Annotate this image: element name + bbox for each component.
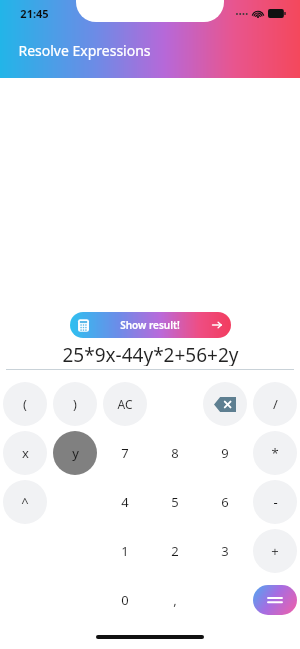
staticText: 21:45 xyxy=(20,6,49,21)
button[interactable]: Go xyxy=(210,318,224,332)
button[interactable]: Equals xyxy=(253,585,297,615)
button[interactable]: 4 xyxy=(103,480,147,524)
staticText: 9 xyxy=(221,444,229,462)
staticText: ^ xyxy=(21,493,29,511)
button[interactable]: 8 xyxy=(153,431,197,475)
button[interactable]: AC xyxy=(103,382,147,426)
staticText: ( xyxy=(23,395,27,413)
button[interactable]: / xyxy=(253,382,297,426)
button[interactable]: 6 xyxy=(203,480,247,524)
staticText: 6 xyxy=(221,493,229,511)
button[interactable]: Show result! xyxy=(70,312,231,338)
button[interactable]: x xyxy=(3,431,47,475)
button[interactable]: + xyxy=(253,529,297,573)
button[interactable]: ^ xyxy=(3,480,47,524)
staticText: 4 xyxy=(121,493,129,511)
staticText: * xyxy=(271,444,279,462)
button[interactable]: 5 xyxy=(153,480,197,524)
staticText: / xyxy=(273,395,278,413)
staticText: 0 xyxy=(121,591,129,609)
staticText: Resolve Expressions xyxy=(18,41,151,60)
button[interactable]: 3 xyxy=(203,529,247,573)
button[interactable]: , xyxy=(153,578,197,622)
staticText: 1 xyxy=(121,542,129,560)
button[interactable]: * xyxy=(253,431,297,475)
button[interactable]: ( xyxy=(3,382,47,426)
button[interactable]: 7 xyxy=(103,431,147,475)
button[interactable]: y xyxy=(53,431,97,475)
staticText: Show result! xyxy=(120,318,180,332)
staticText: ) xyxy=(73,395,77,413)
staticText: 5 xyxy=(171,493,179,511)
button[interactable]: 1 xyxy=(103,529,147,573)
button[interactable]: 0 xyxy=(103,578,147,622)
staticText: 2 xyxy=(171,542,179,560)
staticText: 8 xyxy=(171,444,179,462)
staticText: , xyxy=(173,591,177,609)
staticText: y xyxy=(72,444,79,462)
button[interactable]: Backspace xyxy=(203,382,247,426)
button[interactable]: ) xyxy=(53,382,97,426)
staticText: AC xyxy=(117,396,133,412)
staticText: 3 xyxy=(221,542,229,560)
staticText: 7 xyxy=(121,444,129,462)
staticText: + xyxy=(271,542,279,560)
button[interactable]: - xyxy=(253,480,297,524)
staticText: - xyxy=(273,493,278,511)
staticText: 25*9x-44y*2+56+2y xyxy=(62,342,239,366)
staticText: x xyxy=(22,444,29,462)
button[interactable]: 2 xyxy=(153,529,197,573)
button[interactable]: 9 xyxy=(203,431,247,475)
